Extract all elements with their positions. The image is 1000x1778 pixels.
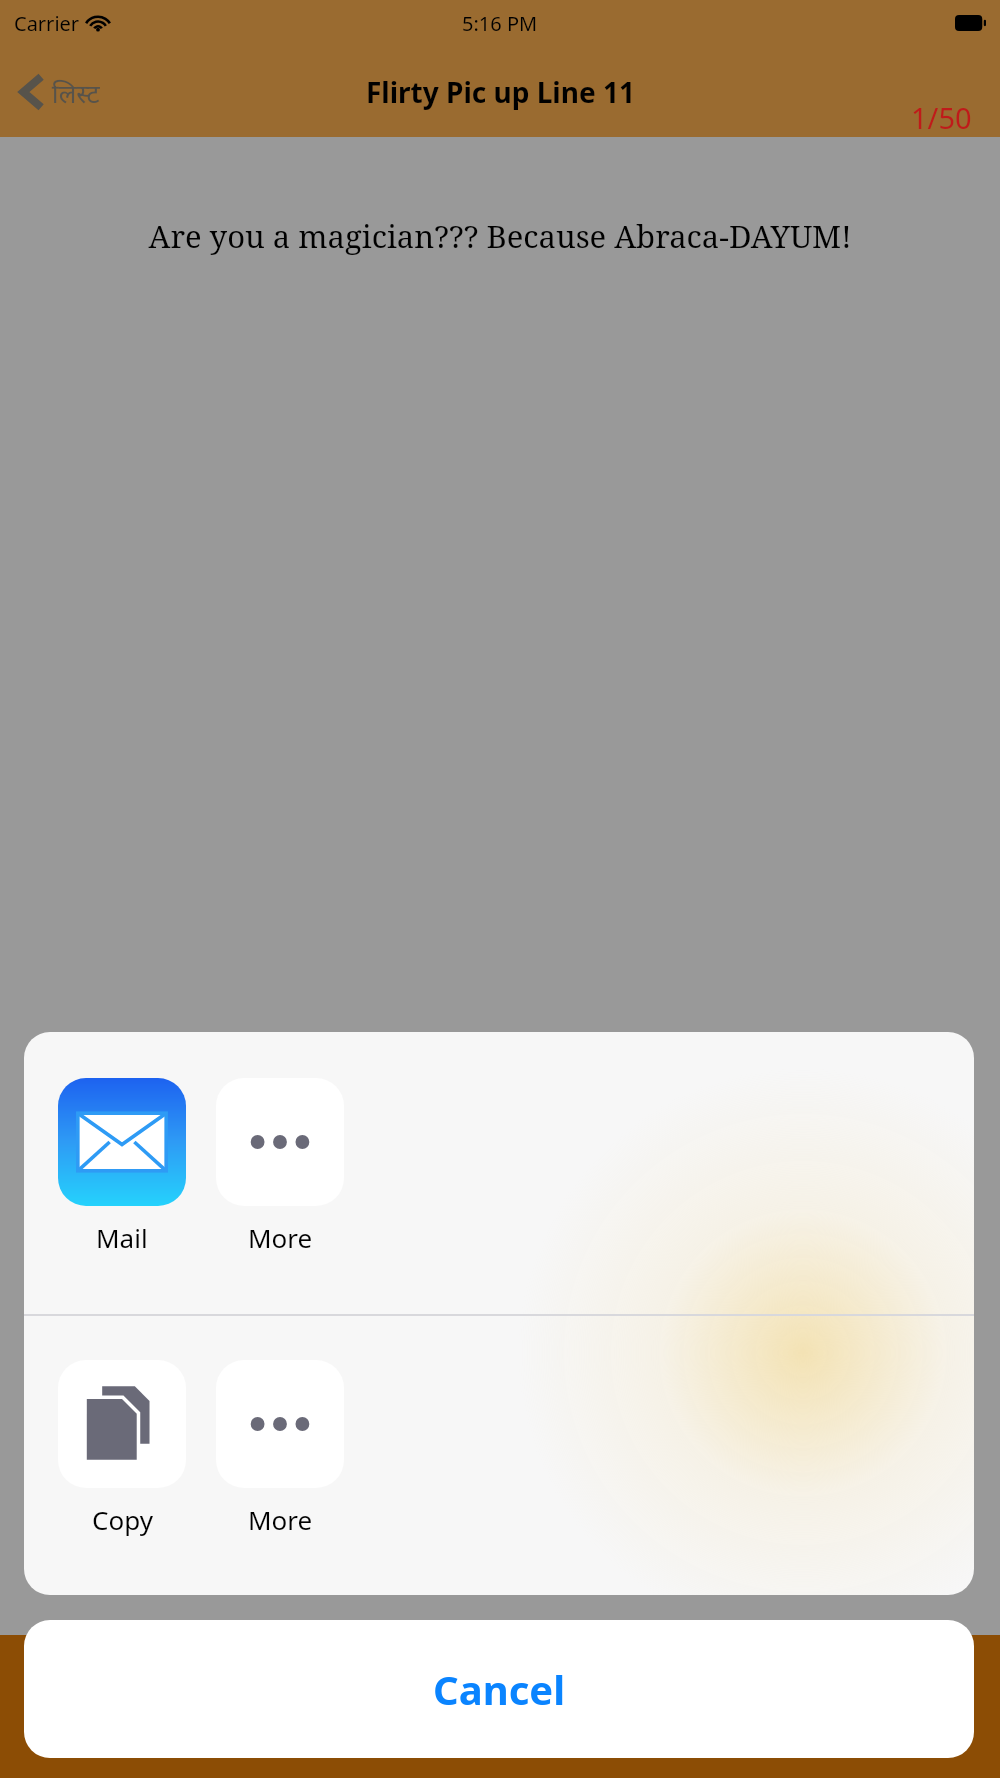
- button[interactable]: Mail: [57, 1078, 187, 1255]
- button[interactable]: लिस्ट: [12, 67, 108, 117]
- button[interactable]: More: [215, 1360, 345, 1537]
- staticText: More: [248, 1502, 313, 1537]
- button[interactable]: More: [215, 1078, 345, 1255]
- other: Mail: [58, 1078, 186, 1206]
- staticText: 5:16 PM: [462, 10, 538, 37]
- button[interactable]: Copy: [57, 1360, 187, 1537]
- staticText: लिस्ट: [52, 75, 100, 110]
- staticText: Are you a magician??? Because Abraca-DAY…: [26, 215, 974, 257]
- staticText: Cancel: [433, 1662, 566, 1716]
- other: Copy: [58, 1360, 186, 1488]
- staticText: Copy: [92, 1502, 153, 1537]
- staticText: Carrier: [14, 10, 80, 37]
- staticText: Mail: [96, 1220, 148, 1255]
- button[interactable]: Cancel: [24, 1620, 974, 1758]
- staticText: 1/50: [911, 98, 972, 137]
- other: More: [216, 1360, 344, 1488]
- staticText: More: [248, 1220, 313, 1255]
- staticText: Flirty Pic up Line 11: [366, 73, 635, 111]
- other: More: [216, 1078, 344, 1206]
